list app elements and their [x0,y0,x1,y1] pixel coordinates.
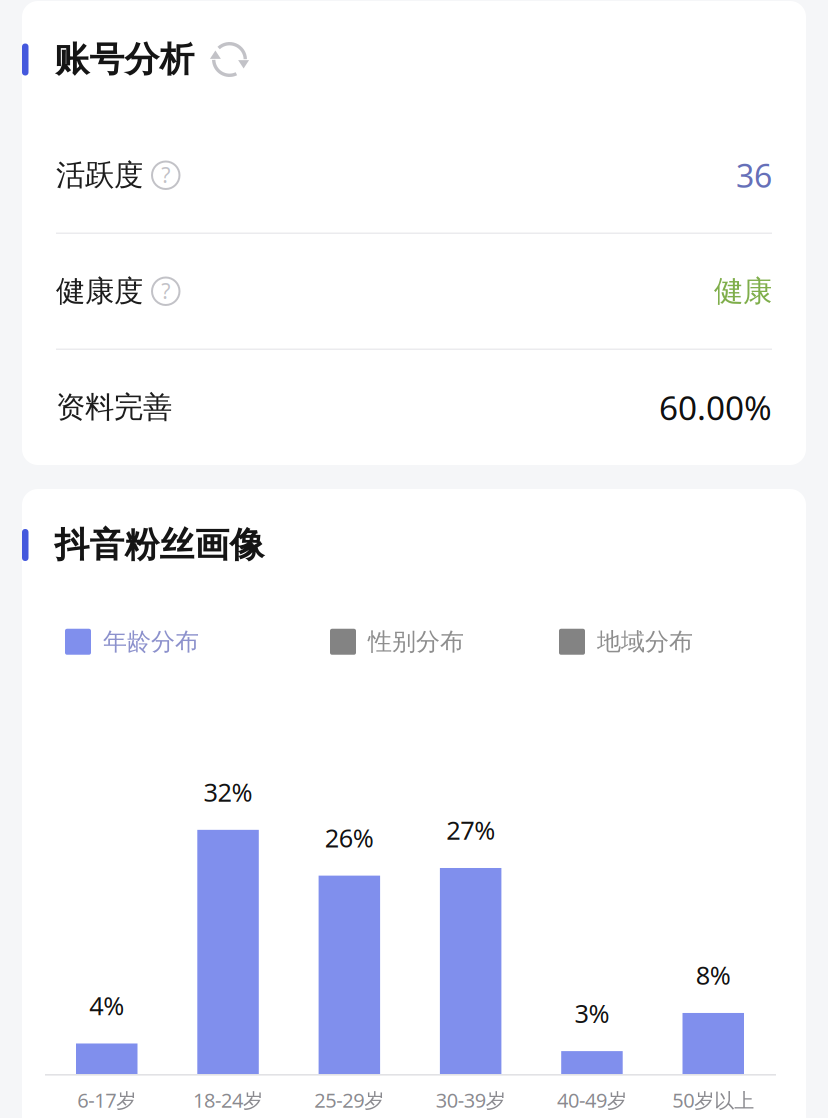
staticText: 25-29岁 [314,1087,384,1113]
staticText: 30-39岁 [436,1087,506,1113]
staticText: 年龄分布 [103,627,199,656]
staticText: 32% [204,775,253,809]
staticText: ? [161,277,170,305]
staticText: 6-17岁 [77,1087,136,1113]
staticText: 26% [325,821,374,854]
button[interactable]: 资料完善 [22,350,806,464]
staticText: 50岁以上 [672,1087,754,1113]
staticText: 27% [446,813,495,847]
button[interactable]: 年龄分布 [65,627,199,656]
staticText: 18-24岁 [193,1087,263,1113]
staticText: 60.00% [659,385,772,429]
button[interactable]: 健康度 [22,234,806,348]
staticText: 账号分析 [54,38,194,81]
staticText: 地域分布 [597,627,693,656]
staticText: 40-49岁 [557,1087,627,1113]
staticText: 健康 [714,273,772,309]
button[interactable]: 性别分布 [330,627,464,656]
staticText: 健康度 [56,273,143,309]
staticText: 36 [736,154,772,196]
staticText: 8% [696,958,731,992]
staticText: 资料完善 [56,389,172,425]
staticText: 4% [89,989,124,1022]
button[interactable]: 地域分布 [559,627,693,656]
staticText: ? [161,161,170,189]
staticText: 活跃度 [56,157,143,193]
button[interactable]: 活跃度 [22,118,806,232]
staticText: 抖音粉丝画像 [54,524,264,566]
staticText: 3% [574,996,609,1030]
staticText: 性别分布 [368,627,464,656]
button[interactable]: 刷新数据 [206,36,252,82]
